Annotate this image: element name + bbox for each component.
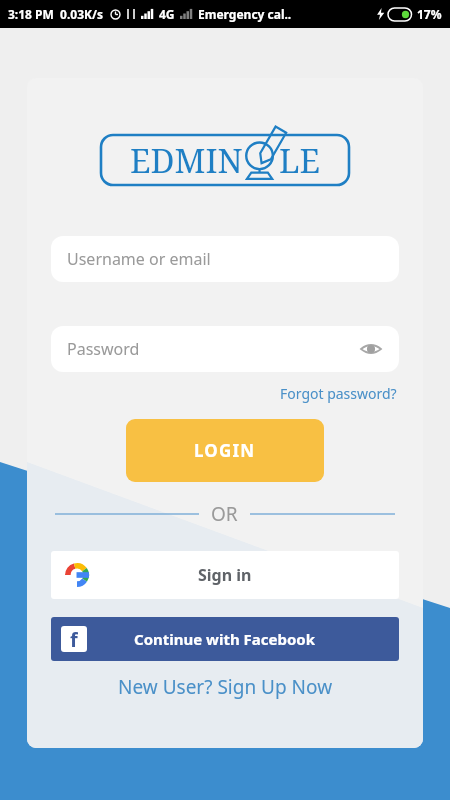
button[interactable]: New User? Sign Up Now bbox=[116, 672, 335, 702]
staticText: New User? Sign Up Now bbox=[118, 674, 333, 700]
staticText: LE bbox=[279, 138, 321, 183]
button[interactable]: LOGIN bbox=[126, 419, 324, 482]
staticText: Username or email bbox=[67, 248, 211, 270]
staticText: Sign in bbox=[198, 564, 252, 586]
staticText: OR bbox=[211, 501, 238, 527]
staticText: EDMIN bbox=[130, 138, 243, 183]
staticText: Emergency cal.. bbox=[198, 6, 292, 22]
button[interactable]: f bbox=[51, 617, 399, 661]
staticText: LOGIN bbox=[194, 439, 256, 462]
staticText: 3:18 PM 0.03K/s bbox=[8, 6, 104, 22]
button[interactable]: Forgot password? bbox=[278, 382, 399, 405]
button[interactable]: Username or email bbox=[51, 236, 399, 282]
staticText: 4G bbox=[159, 6, 175, 22]
button[interactable]: Show password bbox=[359, 337, 383, 361]
staticText: 17% bbox=[417, 6, 442, 22]
staticText: f bbox=[70, 626, 78, 652]
staticText: Continue with Facebook bbox=[134, 629, 316, 649]
button[interactable]: Sign in bbox=[51, 551, 399, 599]
staticText: Password bbox=[67, 338, 140, 360]
staticText: Forgot password? bbox=[280, 384, 397, 403]
button[interactable]: Password bbox=[51, 326, 399, 372]
